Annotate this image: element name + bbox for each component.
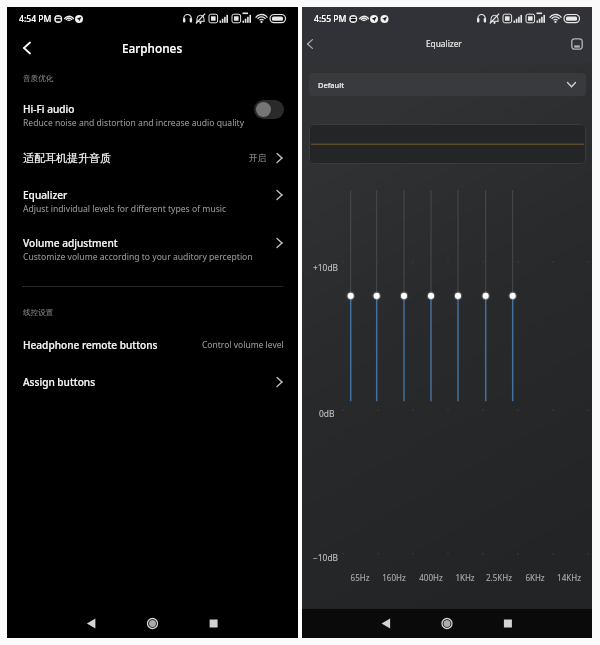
staticText: Earphones xyxy=(122,40,183,56)
button[interactable]: Back xyxy=(299,33,321,55)
button[interactable]: 适配耳机提升音质 xyxy=(7,140,298,176)
staticText: 4:55 PM xyxy=(314,13,347,25)
staticText: 400Hz xyxy=(409,572,453,583)
button[interactable]: Headphone remote buttons xyxy=(7,328,298,362)
staticText: 65Hz xyxy=(338,572,382,583)
staticText: 线控设置 xyxy=(23,308,54,318)
staticText: Reduce noise and distortion and increase… xyxy=(23,117,245,129)
staticText: Hi-Fi audio xyxy=(23,102,75,116)
staticText: 适配耳机提升音质 xyxy=(23,151,111,165)
staticText: Equalizer xyxy=(23,188,68,202)
staticText: 6KHz xyxy=(513,572,557,583)
staticText: Assign buttons xyxy=(23,375,96,389)
staticText: Adjust individual levels for different t… xyxy=(23,203,227,215)
button[interactable]: Equalizer xyxy=(7,182,298,220)
button[interactable]: Volume adjustment xyxy=(7,230,298,268)
staticText: −10dB xyxy=(313,552,339,563)
staticText: Control volume level xyxy=(202,339,284,351)
staticText: Default xyxy=(318,80,344,90)
button[interactable]: Default xyxy=(309,73,586,96)
staticText: Volume adjustment xyxy=(23,236,118,250)
staticText: 音质优化 xyxy=(23,74,54,84)
staticText: Headphone remote buttons xyxy=(23,338,158,352)
button[interactable]: Assign buttons xyxy=(7,365,298,399)
staticText: 4:54 PM xyxy=(19,13,52,25)
button[interactable]: Save preset xyxy=(567,34,587,54)
staticText: +10dB xyxy=(313,262,339,273)
staticText: 开启 xyxy=(249,153,266,164)
staticText: 1KHz xyxy=(443,572,487,583)
staticText: 160Hz xyxy=(372,572,416,583)
button[interactable]: Hi-Fi audio xyxy=(7,96,298,134)
staticText: 14KHz xyxy=(547,572,591,583)
staticText: 0dB xyxy=(319,408,335,419)
staticText: Customize volume according to your audit… xyxy=(23,251,253,263)
staticText: 2.5KHz xyxy=(477,572,521,583)
button[interactable]: Back xyxy=(16,37,38,59)
staticText: Equalizer xyxy=(426,38,462,49)
